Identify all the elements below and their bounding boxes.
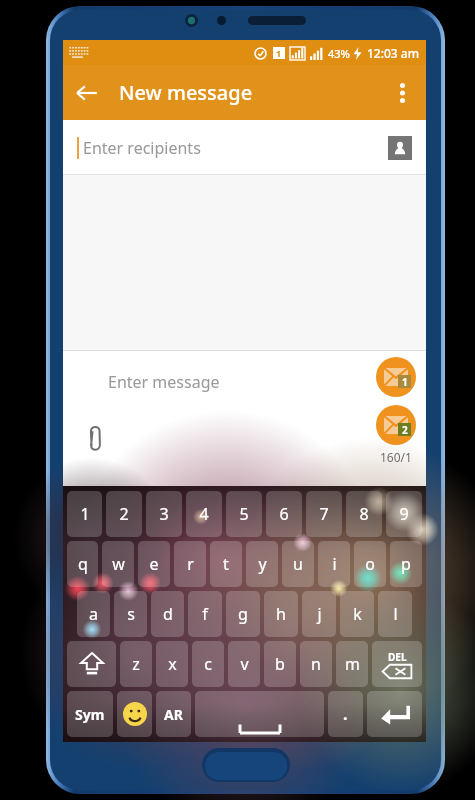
staticText: a	[89, 603, 98, 625]
button[interactable]: 4	[186, 491, 222, 537]
button[interactable]: p	[390, 541, 422, 587]
staticText: 6	[279, 503, 289, 525]
button[interactable]: 3	[146, 491, 182, 537]
staticText: 12:03 am	[367, 45, 420, 61]
staticText: b	[275, 653, 285, 675]
button[interactable]: g	[226, 591, 260, 637]
button[interactable]: a	[77, 591, 110, 637]
button[interactable]: d	[151, 591, 184, 637]
button[interactable]: Attach	[77, 423, 111, 457]
button[interactable]: h	[264, 591, 298, 637]
button[interactable]: b	[264, 641, 296, 687]
button[interactable]: r	[174, 541, 206, 587]
staticText: m	[345, 653, 360, 675]
button[interactable]: q	[67, 541, 98, 587]
staticText: z	[132, 653, 140, 675]
staticText: Sym	[75, 705, 105, 724]
other: Space	[195, 691, 324, 737]
button[interactable]: Delete	[372, 641, 422, 687]
staticText: New message	[119, 79, 253, 106]
button[interactable]: f	[188, 591, 222, 637]
button[interactable]: o	[354, 541, 386, 587]
staticText: 160/1	[380, 449, 412, 465]
button[interactable]: 5	[226, 491, 262, 537]
other: Enter	[380, 703, 410, 725]
button[interactable]: 6	[266, 491, 302, 537]
button[interactable]: Space	[195, 691, 324, 737]
button[interactable]: 7	[306, 491, 342, 537]
button[interactable]: 9	[386, 491, 422, 537]
staticText: i	[332, 553, 337, 575]
staticText: s	[127, 603, 135, 625]
staticText: 1	[276, 47, 282, 59]
staticText: n	[311, 653, 321, 675]
staticText: v	[240, 653, 249, 675]
button[interactable]: x	[156, 641, 188, 687]
button[interactable]: More options	[378, 69, 426, 117]
staticText: p	[401, 553, 411, 575]
button[interactable]: AR	[156, 691, 191, 737]
button[interactable]: e	[138, 541, 170, 587]
button[interactable]: w	[102, 541, 134, 587]
staticText: u	[293, 553, 303, 575]
button[interactable]: j	[302, 591, 336, 637]
button[interactable]: m	[336, 641, 368, 687]
button[interactable]: y	[246, 541, 278, 587]
button[interactable]: k	[340, 591, 374, 637]
other: Delete	[382, 650, 412, 679]
other: Shift	[79, 651, 105, 677]
staticText: j	[317, 603, 322, 625]
staticText: .	[343, 703, 348, 725]
staticText: e	[149, 553, 159, 575]
button[interactable]: Back	[63, 69, 111, 117]
button[interactable]: Enter recipients	[63, 120, 426, 175]
staticText: AR	[164, 705, 183, 724]
button[interactable]: z	[120, 641, 152, 687]
staticText: g	[238, 603, 248, 625]
staticText: 7	[319, 503, 329, 525]
button[interactable]: t	[210, 541, 242, 587]
button[interactable]: v	[228, 641, 260, 687]
button[interactable]: s	[114, 591, 147, 637]
button[interactable]: c	[192, 641, 224, 687]
staticText: 2	[402, 423, 408, 436]
staticText: d	[163, 603, 173, 625]
staticText: o	[365, 553, 375, 575]
button[interactable]: l	[378, 591, 412, 637]
staticText: 2	[119, 503, 129, 525]
button[interactable]: Enter	[367, 691, 422, 737]
other: Emoji	[123, 702, 147, 726]
staticText: 4	[199, 503, 209, 525]
button[interactable]: Add contact	[388, 136, 412, 160]
staticText: 5	[239, 503, 249, 525]
button[interactable]: .	[328, 691, 363, 737]
staticText: h	[276, 603, 286, 625]
staticText: q	[78, 553, 88, 575]
button[interactable]: i	[318, 541, 350, 587]
staticText: 43%	[328, 46, 350, 61]
staticText: 1	[80, 503, 90, 525]
staticText: l	[393, 603, 398, 625]
button[interactable]: Send message 2	[376, 405, 416, 445]
button[interactable]: Shift	[67, 641, 116, 687]
button[interactable]: Emoji	[117, 691, 152, 737]
staticText: t	[223, 553, 229, 575]
button[interactable]: Sym	[67, 691, 113, 737]
button[interactable]: n	[300, 641, 332, 687]
staticText: x	[168, 653, 177, 675]
button[interactable]: Send message 1	[376, 357, 416, 397]
staticText: k	[353, 603, 362, 625]
button[interactable]: Enter message	[108, 371, 220, 393]
staticText: c	[204, 653, 212, 675]
button[interactable]: 2	[106, 491, 142, 537]
staticText: 9	[399, 503, 409, 525]
staticText: 3	[159, 503, 169, 525]
staticText: y	[258, 553, 267, 575]
button[interactable]: 1	[67, 491, 102, 537]
staticText: f	[202, 603, 208, 625]
button[interactable]: 8	[346, 491, 382, 537]
button[interactable]: u	[282, 541, 314, 587]
staticText: w	[112, 553, 125, 575]
staticText: r	[187, 553, 194, 575]
staticText: Enter recipients	[83, 137, 201, 159]
